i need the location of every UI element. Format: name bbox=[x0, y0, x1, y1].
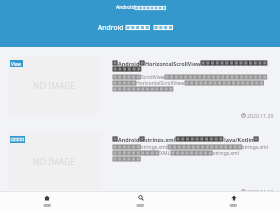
staticText: View bbox=[11, 61, 22, 67]
button[interactable]: Home bbox=[0, 192, 94, 210]
staticText: Android bbox=[116, 4, 135, 11]
staticText: NO IMAGE bbox=[33, 80, 76, 92]
staticText: ScrollView bbox=[141, 74, 165, 80]
button[interactable]: Search bbox=[94, 192, 187, 210]
button[interactable]: Page top bbox=[187, 192, 280, 210]
staticText: XML bbox=[160, 150, 171, 156]
staticText: strings.xml bbox=[145, 136, 176, 142]
staticText: Android bbox=[118, 60, 140, 66]
staticText: strings.xml bbox=[242, 144, 269, 150]
staticText: strings.xml bbox=[213, 150, 240, 156]
staticText: NO IMAGE bbox=[33, 156, 76, 168]
staticText: Java/Kotlin bbox=[224, 136, 254, 142]
staticText: 2020.11.29 bbox=[247, 188, 274, 195]
staticText: strings.xml bbox=[141, 144, 168, 150]
staticText: Android bbox=[98, 23, 126, 32]
staticText: HorizontalScrollView bbox=[136, 80, 185, 86]
staticText: HorizontalScrollView bbox=[145, 60, 201, 66]
staticText: Android bbox=[118, 136, 140, 142]
button[interactable]: NO IMAGE bbox=[0, 47, 280, 124]
staticText: 2020.11.29 bbox=[247, 112, 274, 119]
button[interactable] bbox=[10, 136, 25, 143]
button[interactable]: View bbox=[10, 60, 23, 67]
button[interactable]: NO IMAGE bbox=[0, 123, 280, 200]
